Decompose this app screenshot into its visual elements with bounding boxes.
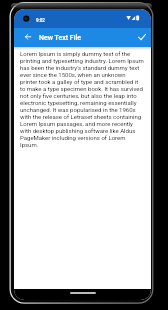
staticText: 9:02 bbox=[36, 18, 45, 23]
button[interactable]: Back bbox=[17, 28, 34, 47]
staticText: Lorem Ipsum is simply dummy text of the … bbox=[20, 50, 144, 148]
staticText: New Text File bbox=[39, 34, 81, 42]
button[interactable]: Save bbox=[133, 28, 149, 47]
